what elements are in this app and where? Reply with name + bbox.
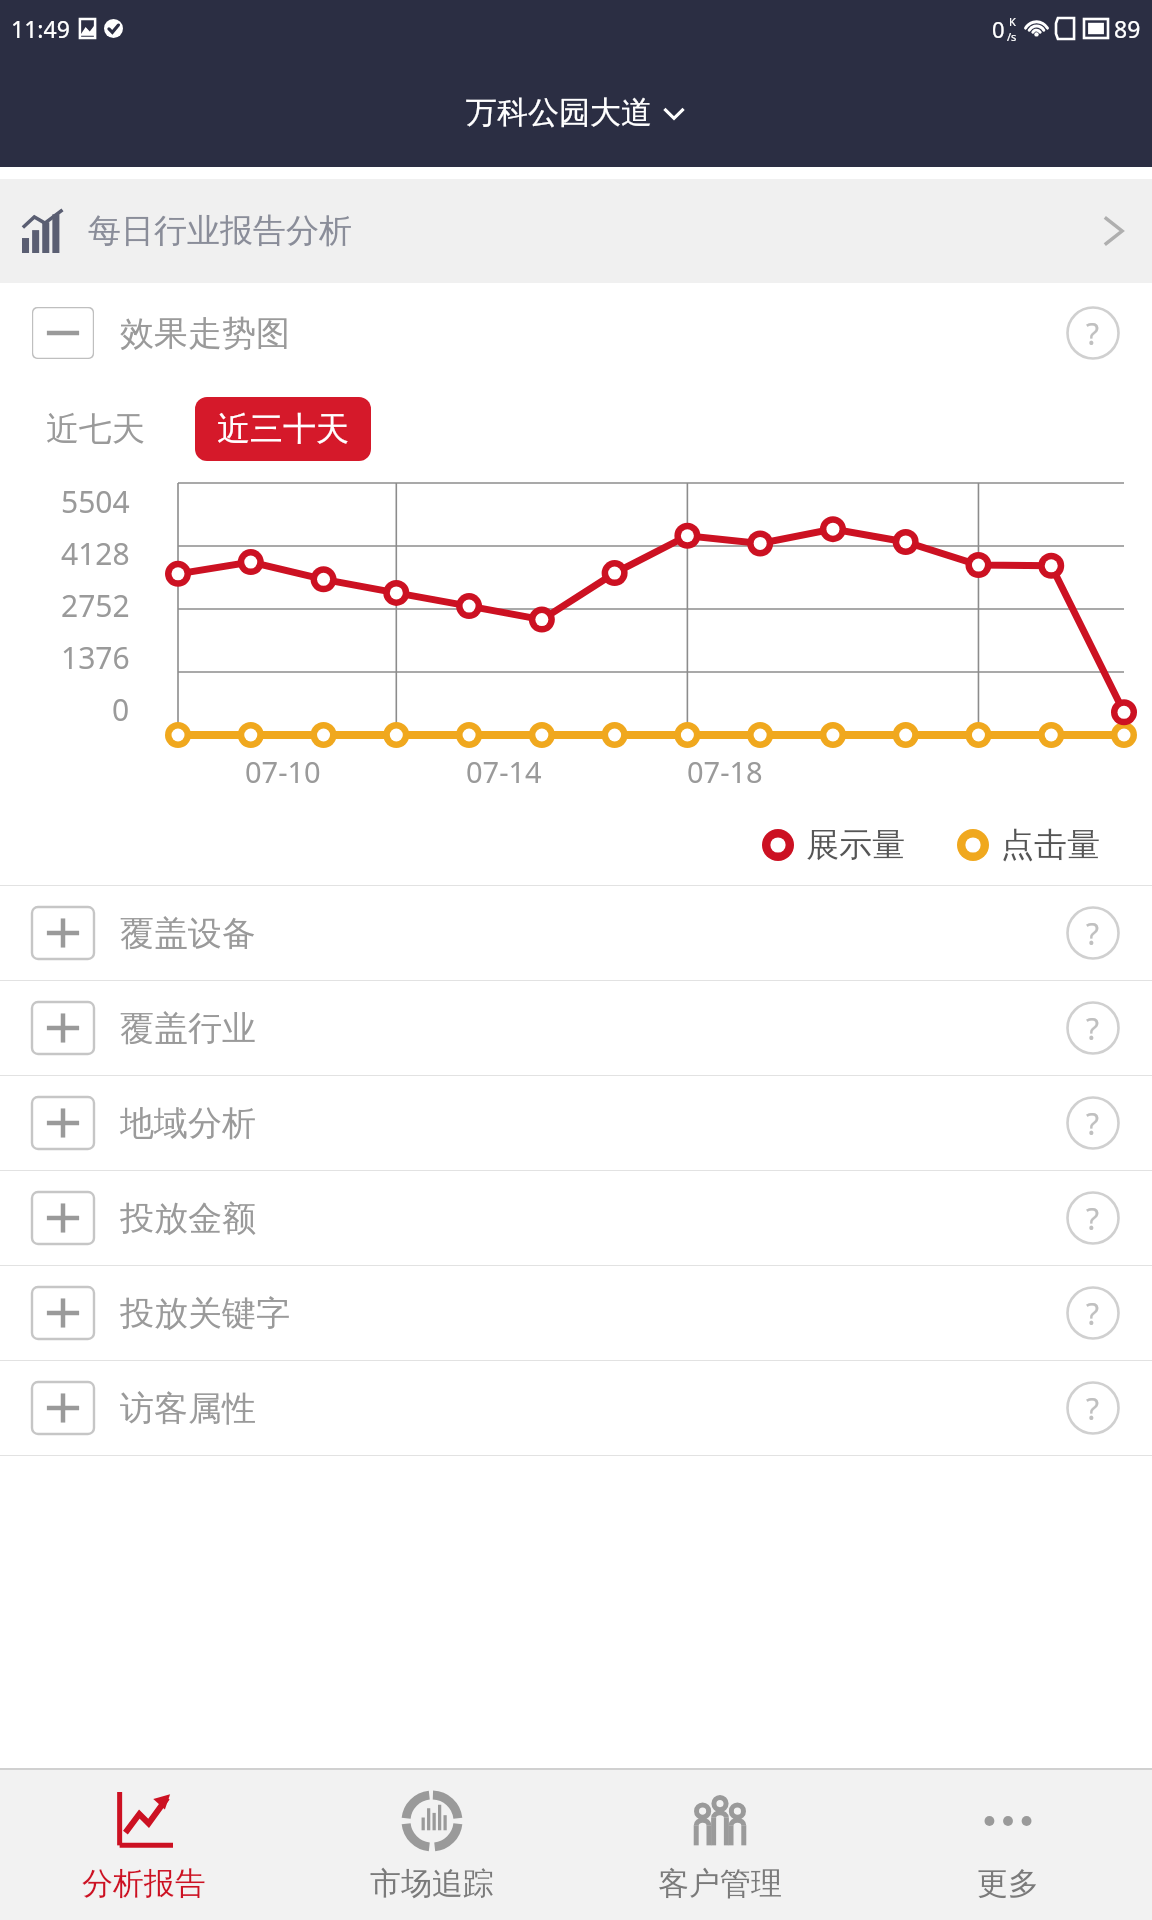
button[interactable]: 帮助 xyxy=(1066,1191,1120,1245)
staticText: 点击量 xyxy=(1001,824,1100,866)
staticText: 07-10 xyxy=(245,752,321,791)
button[interactable]: 覆盖行业 xyxy=(0,981,1152,1075)
staticText: ? xyxy=(1086,913,1100,954)
staticText: 1376 xyxy=(61,637,130,678)
staticText: 访客属性 xyxy=(120,1387,256,1430)
button[interactable]: 投放金额 xyxy=(0,1171,1152,1265)
button[interactable]: 分析报告 xyxy=(0,1770,288,1920)
staticText: ? xyxy=(1086,1198,1100,1239)
button[interactable]: 投放关键字 xyxy=(0,1266,1152,1360)
staticText: 07-14 xyxy=(466,752,542,791)
button[interactable]: 市场追踪 xyxy=(288,1770,576,1920)
staticText: 0 xyxy=(112,689,130,730)
staticText: 近三十天 xyxy=(217,408,349,450)
staticText: 展示量 xyxy=(806,824,905,866)
button[interactable]: 万科公园大道 xyxy=(0,57,1152,167)
staticText: 07-18 xyxy=(687,752,763,791)
button[interactable]: 近七天 xyxy=(32,398,159,460)
staticText: 地域分析 xyxy=(120,1102,256,1145)
button[interactable]: 每日行业报告分析 xyxy=(0,179,1152,283)
staticText: ? xyxy=(1086,1293,1100,1334)
staticText: 4128 xyxy=(61,533,130,574)
staticText: ? xyxy=(1086,1103,1100,1144)
staticText: ? xyxy=(1086,313,1100,354)
staticText: 市场追踪 xyxy=(370,1864,494,1903)
button[interactable]: 地域分析 xyxy=(0,1076,1152,1170)
button[interactable]: 访客属性 xyxy=(0,1361,1152,1455)
staticText: 客户管理 xyxy=(658,1864,782,1903)
staticText: 近七天 xyxy=(46,408,145,450)
button[interactable]: 更多 xyxy=(864,1770,1152,1920)
staticText: ? xyxy=(1086,1388,1100,1429)
staticText: 更多 xyxy=(977,1864,1039,1903)
button[interactable]: 帮助 xyxy=(1066,1381,1120,1435)
staticText: 11:49 xyxy=(11,13,70,44)
staticText: ? xyxy=(1086,1008,1100,1049)
staticText: 投放关键字 xyxy=(120,1292,290,1335)
staticText: 2752 xyxy=(61,585,130,626)
staticText: 89 xyxy=(1114,13,1141,44)
staticText: 效果走势图 xyxy=(120,312,290,355)
staticText: 每日行业报告分析 xyxy=(88,210,352,252)
staticText: 覆盖设备 xyxy=(120,912,256,955)
staticText: 万科公园大道 xyxy=(466,93,652,132)
button[interactable]: 帮助 xyxy=(1066,1096,1120,1150)
staticText: /s xyxy=(1007,29,1017,44)
staticText: 5504 xyxy=(61,481,130,522)
button[interactable]: 客户管理 xyxy=(576,1770,864,1920)
button[interactable]: 帮助 xyxy=(1066,1001,1120,1055)
button[interactable]: 帮助 xyxy=(1066,906,1120,960)
button[interactable]: 近三十天 xyxy=(195,397,371,461)
button[interactable]: 帮助 xyxy=(1066,1286,1120,1340)
button[interactable]: 覆盖设备 xyxy=(0,886,1152,980)
button[interactable]: 效果走势图 xyxy=(0,283,1152,383)
button[interactable]: 帮助 xyxy=(1066,306,1120,360)
staticText: K xyxy=(1009,14,1016,29)
staticText: 0 xyxy=(992,14,1005,44)
staticText: 投放金额 xyxy=(120,1197,256,1240)
staticText: 分析报告 xyxy=(82,1864,206,1903)
staticText: 覆盖行业 xyxy=(120,1007,256,1050)
